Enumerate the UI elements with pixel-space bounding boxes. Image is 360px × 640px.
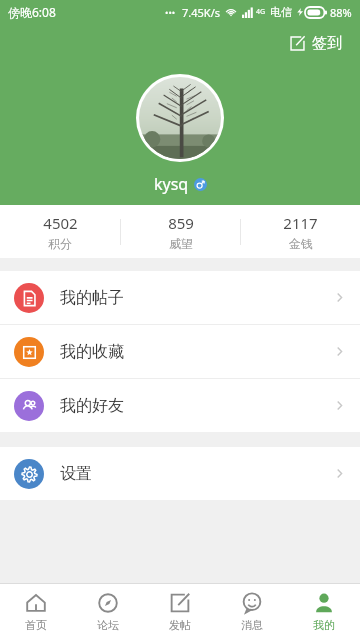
button[interactable]: 859 [121,213,240,251]
staticText: 金钱 [289,236,313,251]
button[interactable]: 首页 [0,584,72,640]
button[interactable]: 我的好友 [0,379,360,432]
staticText: 发帖 [169,618,191,632]
staticText: 88% [330,5,352,20]
button[interactable]: 2117 [241,213,360,251]
staticText: 我的 [313,618,335,632]
staticText: 859 [168,213,194,233]
staticText: 积分 [48,236,72,251]
button[interactable]: 设置 [0,447,360,500]
button[interactable]: 消息 [216,584,288,640]
staticText: 2117 [283,213,318,233]
button[interactable]: 我的帖子 [0,271,360,324]
staticText: 傍晚6:08 [8,4,56,20]
button[interactable]: 我的 [288,584,360,640]
staticText: 论坛 [97,618,119,632]
button[interactable]: 发帖 [144,584,216,640]
staticText: 设置 [60,464,92,484]
button[interactable]: 论坛 [72,584,144,640]
button[interactable]: 4502 [0,213,120,251]
staticText: 7.45K/s [182,5,220,20]
staticText: 4502 [43,213,78,233]
staticText: 签到 [312,34,342,53]
staticText: 威望 [169,236,193,251]
staticText: ••• [165,6,176,18]
staticText: 首页 [25,618,47,632]
staticText: 消息 [241,618,263,632]
button[interactable]: 签到 [283,30,348,57]
staticText: kysq [154,173,189,195]
button[interactable]: 我的收藏 [0,325,360,378]
staticText: 我的帖子 [60,288,124,308]
staticText: 我的好友 [60,396,124,416]
staticText: 电信 [270,5,292,19]
staticText: 4G [256,7,266,17]
staticText: 我的收藏 [60,342,124,362]
